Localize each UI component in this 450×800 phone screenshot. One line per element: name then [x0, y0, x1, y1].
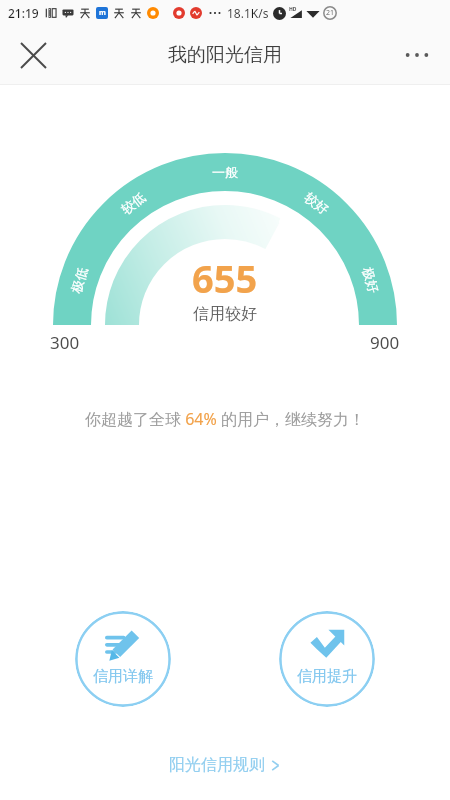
button[interactable]: 信用提升	[279, 611, 375, 707]
staticText: 21	[326, 8, 335, 18]
staticText: 较好	[302, 189, 332, 217]
staticText: 信用详解	[93, 667, 153, 686]
staticText: 655	[192, 252, 258, 304]
staticText: 你超越了全球 64% 的用户，继续努力！	[85, 408, 365, 430]
staticText: 信用提升	[297, 667, 357, 686]
staticText: 阳光信用规则	[169, 755, 265, 775]
button[interactable]: Close	[8, 30, 58, 80]
staticText: 我的阳光信用	[168, 43, 282, 67]
button[interactable]: 信用详解	[75, 611, 171, 707]
staticText: 较低	[118, 189, 148, 217]
button[interactable]: More options	[392, 30, 442, 80]
staticText: 极好	[359, 265, 382, 295]
staticText: m	[99, 8, 106, 18]
staticText: 一般	[212, 164, 238, 180]
staticText: 信用较好	[193, 304, 257, 324]
staticText: 18.1K/s	[227, 5, 269, 21]
staticText: 900	[370, 331, 400, 354]
staticText: 极低	[67, 265, 90, 295]
button[interactable]: 阳光信用规则	[155, 750, 295, 780]
staticText: 300	[50, 331, 80, 354]
staticText: HD	[289, 6, 297, 13]
staticText: 21:19	[8, 5, 39, 21]
